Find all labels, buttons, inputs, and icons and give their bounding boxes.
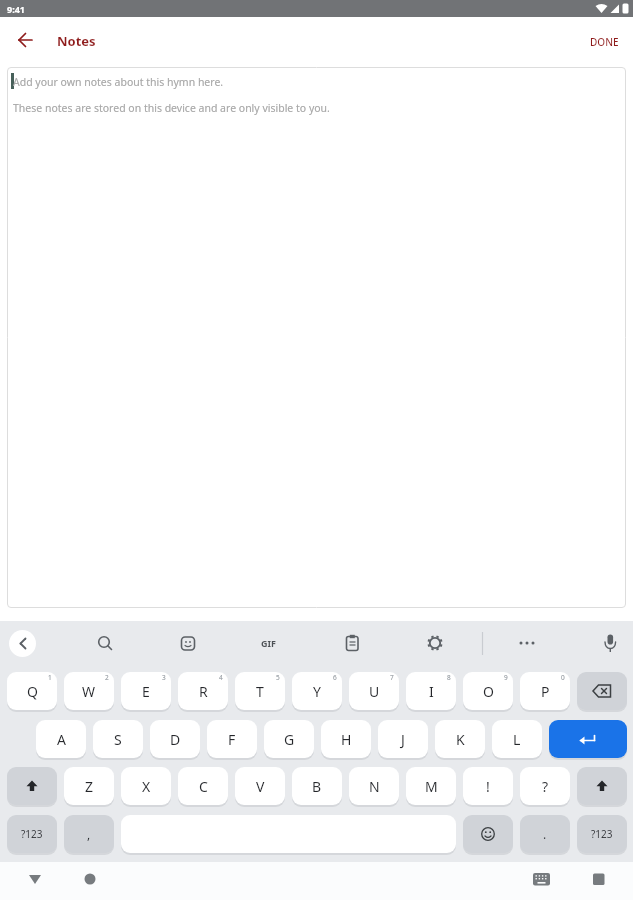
staticText: 1 xyxy=(48,673,52,682)
staticText: J xyxy=(401,730,405,749)
staticText: C xyxy=(199,777,208,796)
staticText: GIF xyxy=(261,637,276,649)
staticText: ?123 xyxy=(591,827,613,841)
staticText: Notes xyxy=(57,32,96,50)
staticText: V xyxy=(256,777,265,796)
staticText: A xyxy=(57,730,66,749)
staticText: O xyxy=(483,682,494,701)
staticText: Y xyxy=(313,682,321,701)
staticText: 6 xyxy=(333,673,337,682)
staticText: F xyxy=(228,730,236,749)
staticText: Add your own notes about this hymn here. xyxy=(13,75,224,89)
staticText: Z xyxy=(85,777,94,796)
staticText: 9:41 xyxy=(7,3,25,15)
staticText: ! xyxy=(486,777,490,796)
staticText: Q xyxy=(27,682,38,701)
staticText: G xyxy=(284,730,295,749)
staticText: X xyxy=(142,777,151,796)
staticText: L xyxy=(513,730,521,749)
staticText: P xyxy=(541,682,550,701)
staticText: W xyxy=(82,682,96,701)
staticText: 7 xyxy=(390,673,394,682)
staticText: T xyxy=(256,682,264,701)
staticText: 9 xyxy=(504,673,508,682)
staticText: M xyxy=(425,777,438,796)
staticText: , xyxy=(87,826,91,842)
staticText: S xyxy=(114,730,122,749)
staticText: 4 xyxy=(219,673,223,682)
staticText: N xyxy=(369,777,380,796)
staticText: 0 xyxy=(561,673,565,682)
staticText: 5 xyxy=(276,673,280,682)
staticText: U xyxy=(369,682,380,701)
staticText: DONE xyxy=(590,35,619,49)
staticText: ?123 xyxy=(21,827,43,841)
staticText: 8 xyxy=(447,673,451,682)
staticText: ? xyxy=(542,777,549,796)
staticText: 2 xyxy=(105,673,109,682)
staticText: E xyxy=(142,682,150,701)
staticText: K xyxy=(456,730,465,749)
staticText: D xyxy=(170,730,181,749)
staticText: 3 xyxy=(162,673,166,682)
staticText: . xyxy=(543,826,547,842)
staticText: B xyxy=(312,777,322,796)
staticText: I xyxy=(429,682,434,701)
staticText: These notes are stored on this device an… xyxy=(13,101,330,115)
staticText: H xyxy=(341,730,352,749)
staticText: R xyxy=(199,682,208,701)
